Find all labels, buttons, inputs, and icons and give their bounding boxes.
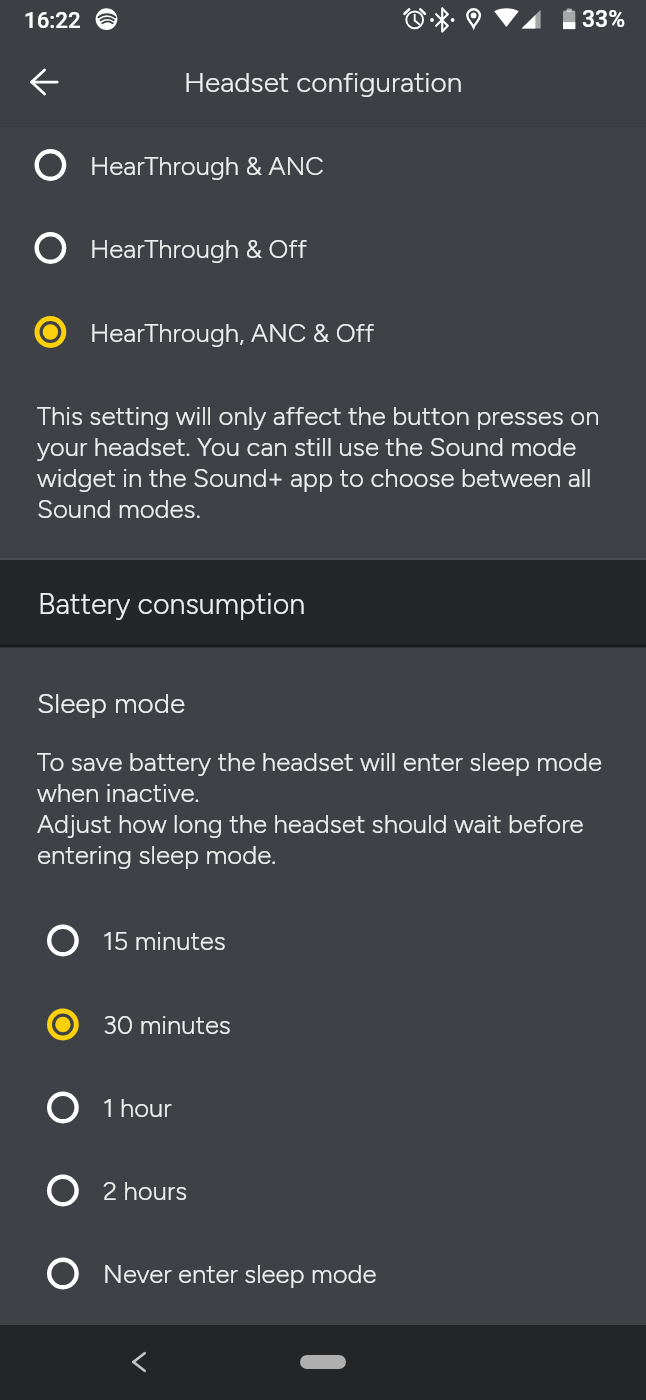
staticText: To save battery the headset will enter s… [37, 746, 622, 870]
button[interactable]: 2 hours [0, 1149, 646, 1232]
staticText: 2 hours [103, 1176, 188, 1207]
staticText: Never enter sleep mode [103, 1259, 377, 1290]
button[interactable]: HearThrough & Off [0, 206, 646, 290]
staticText: This setting will only affect the button… [37, 400, 622, 524]
staticText: Battery consumption [38, 587, 306, 621]
staticText: 33% [582, 6, 626, 33]
staticText: HearThrough, ANC & Off [90, 318, 375, 349]
staticText: 16:22 [24, 7, 81, 33]
staticText: Sleep mode [37, 686, 186, 720]
button[interactable]: Never enter sleep mode [0, 1232, 646, 1315]
staticText: 30 minutes [103, 1010, 231, 1041]
button[interactable]: 15 minutes [0, 899, 646, 982]
button[interactable]: HearThrough, ANC & Off [0, 290, 646, 374]
button[interactable]: 1 hour [0, 1066, 646, 1149]
staticText: 1 hour [103, 1093, 172, 1124]
button[interactable]: 30 minutes [0, 983, 646, 1066]
staticText: HearThrough & ANC [90, 151, 324, 182]
staticText: 15 minutes [103, 926, 226, 957]
staticText: Headset configuration [184, 65, 463, 99]
button[interactable]: HearThrough & ANC [0, 123, 646, 207]
staticText: HearThrough & Off [90, 234, 307, 265]
button[interactable]: Back [115, 1338, 163, 1386]
button[interactable]: Home [300, 1355, 346, 1369]
button[interactable]: Back [12, 52, 72, 112]
